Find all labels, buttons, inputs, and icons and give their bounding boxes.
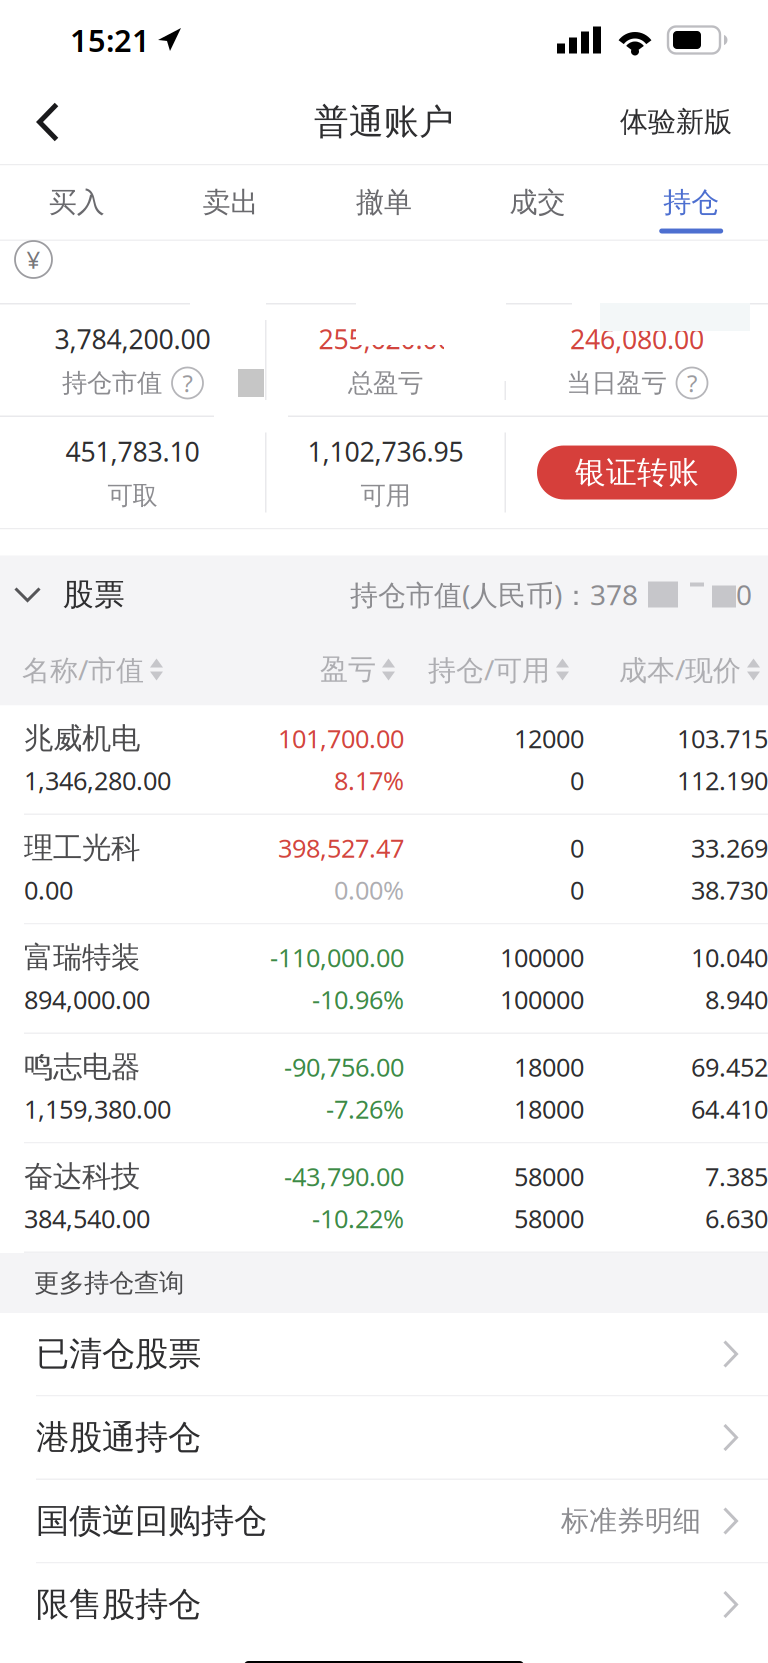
staticText: 限售股持仓 bbox=[36, 1584, 201, 1625]
button[interactable]: 名称/市值 bbox=[0, 633, 320, 705]
staticText: 112.190 bbox=[677, 764, 768, 797]
staticText: 101,700.00 bbox=[278, 722, 404, 755]
staticText: 总盈亏 bbox=[348, 367, 423, 398]
staticText: 可取 bbox=[107, 480, 157, 511]
button[interactable]: 撤单 bbox=[307, 165, 461, 239]
staticText: 58000 bbox=[514, 1202, 584, 1235]
staticText: 1,159,380.00 bbox=[24, 1092, 171, 1126]
staticText: 普通账户 bbox=[314, 101, 454, 143]
button[interactable]: 持仓/可用 bbox=[428, 633, 619, 705]
staticText: 持仓市值(人民币)：378 bbox=[350, 576, 638, 613]
staticText: 奋达科技 bbox=[24, 1158, 140, 1194]
staticText: 更多持仓查询 bbox=[34, 1267, 184, 1298]
button[interactable]: 买入 bbox=[0, 165, 154, 239]
staticText: 国债逆回购持仓 bbox=[36, 1500, 267, 1541]
button[interactable]: 持仓 bbox=[614, 165, 768, 239]
staticText: -7.26% bbox=[326, 1092, 404, 1126]
staticText: 可用 bbox=[360, 480, 410, 511]
staticText: -110,000.00 bbox=[270, 941, 404, 974]
staticText: 1,102,736.95 bbox=[307, 434, 463, 469]
staticText: 成本/现价 bbox=[619, 651, 741, 688]
button[interactable]: 体验新版 bbox=[620, 80, 768, 164]
staticText: 246,080.00 bbox=[570, 321, 704, 357]
staticText: 买入 bbox=[49, 185, 105, 220]
staticText: ? bbox=[687, 367, 697, 399]
staticText: 富瑞特装 bbox=[24, 939, 140, 975]
button[interactable]: 限售股持仓 bbox=[0, 1563, 768, 1645]
staticText: ¥ bbox=[26, 244, 40, 275]
staticText: 0 bbox=[736, 576, 752, 613]
staticText: 12000 bbox=[514, 722, 584, 755]
staticText: 100000 bbox=[500, 941, 584, 974]
staticText: -10.96% bbox=[312, 983, 404, 1016]
button[interactable]: 国债逆回购持仓 bbox=[0, 1480, 768, 1563]
button[interactable]: 返回 bbox=[0, 80, 96, 164]
staticText: 1,346,280.00 bbox=[24, 764, 171, 797]
staticText: 0.00 bbox=[24, 873, 73, 907]
button[interactable]: 理工光科 bbox=[0, 815, 768, 924]
staticText: 6.630 bbox=[705, 1202, 768, 1235]
button[interactable]: 卖出 bbox=[154, 165, 307, 239]
staticText: 0.00% bbox=[334, 873, 404, 907]
staticText: 港股通持仓 bbox=[36, 1417, 201, 1458]
staticText: 8.940 bbox=[705, 983, 768, 1016]
staticText: 兆威机电 bbox=[24, 720, 140, 756]
staticText: 18000 bbox=[514, 1050, 584, 1084]
staticText: 15:21 bbox=[70, 20, 150, 60]
button[interactable]: 银证转账 bbox=[506, 417, 768, 528]
staticText: 理工光科 bbox=[24, 830, 140, 866]
button[interactable]: 兆威机电 bbox=[0, 705, 768, 815]
staticText: 当日盈亏 bbox=[566, 367, 666, 398]
staticText: 成交 bbox=[510, 185, 566, 220]
staticText: 58000 bbox=[514, 1160, 584, 1193]
staticText: 股票 bbox=[63, 576, 125, 613]
staticText: ? bbox=[182, 367, 192, 399]
staticText: 18000 bbox=[514, 1092, 584, 1126]
staticText: 33.269 bbox=[691, 831, 768, 865]
staticText: 3,784,200.00 bbox=[54, 321, 210, 357]
staticText: 103.715 bbox=[677, 722, 768, 755]
staticText: 体验新版 bbox=[620, 105, 732, 139]
staticText: 撤单 bbox=[356, 185, 412, 220]
button[interactable]: 已清仓股票 bbox=[0, 1313, 768, 1396]
staticText: 64.410 bbox=[691, 1092, 768, 1126]
button[interactable]: 成交 bbox=[461, 165, 614, 239]
button[interactable]: 股票 bbox=[0, 555, 125, 633]
button[interactable]: 币种 bbox=[15, 241, 52, 278]
staticText: 398,527.47 bbox=[278, 831, 404, 865]
staticText: 100000 bbox=[500, 983, 584, 1016]
staticText: -43,790.00 bbox=[284, 1160, 404, 1193]
staticText: 盈亏 bbox=[320, 652, 376, 687]
staticText: 0 bbox=[570, 873, 584, 907]
staticText: 255,620.00 bbox=[318, 321, 452, 357]
staticText: 持仓 bbox=[663, 185, 719, 220]
staticText: 卖出 bbox=[202, 185, 258, 220]
staticText: -90,756.00 bbox=[284, 1050, 404, 1084]
staticText: 0 bbox=[570, 764, 584, 797]
button[interactable]: 奋达科技 bbox=[0, 1143, 768, 1253]
staticText: 持仓市值 bbox=[62, 367, 162, 398]
button[interactable]: 港股通持仓 bbox=[0, 1396, 768, 1480]
button[interactable]: 富瑞特装 bbox=[0, 924, 768, 1034]
button[interactable]: 盈亏 bbox=[320, 633, 428, 705]
staticText: 鸣志电器 bbox=[24, 1049, 140, 1085]
staticText: 451,783.10 bbox=[65, 434, 199, 469]
staticText: 10.040 bbox=[691, 941, 768, 974]
staticText: 384,540.00 bbox=[24, 1202, 150, 1235]
staticText: 名称/市值 bbox=[22, 651, 144, 688]
button[interactable]: 成本/现价 bbox=[619, 633, 768, 705]
staticText: 银证转账 bbox=[575, 454, 699, 491]
staticText: 持仓/可用 bbox=[428, 651, 550, 688]
staticText: 69.452 bbox=[691, 1050, 768, 1084]
staticText: -10.22% bbox=[312, 1202, 404, 1235]
staticText: 894,000.00 bbox=[24, 983, 150, 1016]
button[interactable]: 鸣志电器 bbox=[0, 1034, 768, 1143]
staticText: 7.385 bbox=[705, 1160, 768, 1193]
staticText: 已清仓股票 bbox=[36, 1333, 201, 1374]
staticText: 8.17% bbox=[334, 764, 404, 797]
staticText: 0 bbox=[570, 831, 584, 865]
staticText: 标准券明细 bbox=[561, 1504, 701, 1538]
staticText: 38.730 bbox=[691, 873, 768, 907]
